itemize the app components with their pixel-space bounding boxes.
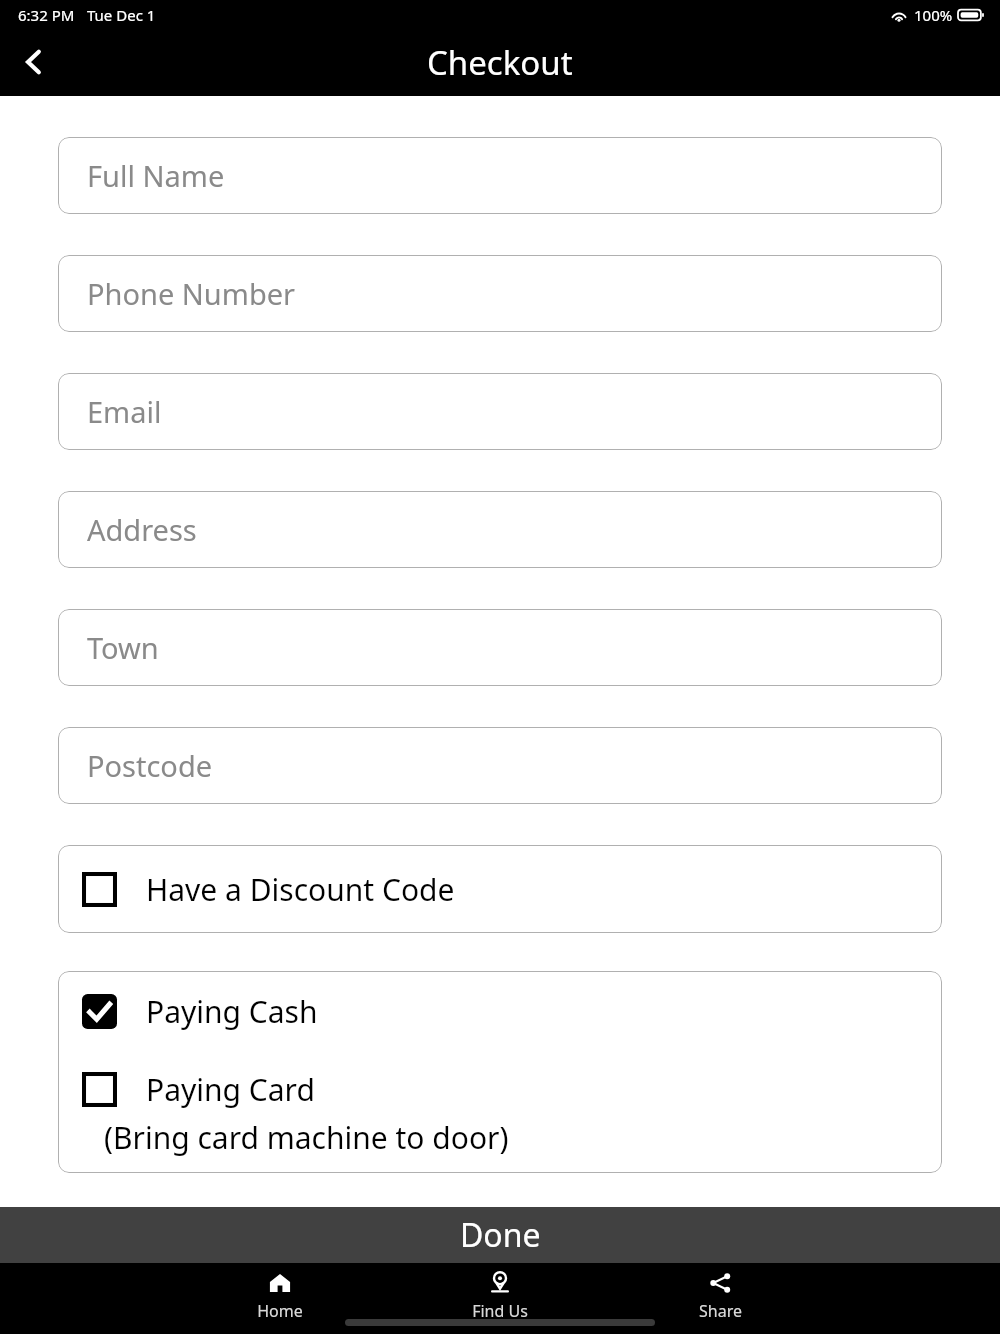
- button[interactable]: Phone Number: [58, 255, 942, 332]
- staticText: Phone Number: [87, 274, 296, 313]
- other: Share: [708, 1271, 732, 1295]
- staticText: Paying Cash: [146, 991, 318, 1032]
- button[interactable]: Home: [170, 1263, 390, 1322]
- button[interactable]: Address: [58, 491, 942, 568]
- button[interactable]: Email: [58, 373, 942, 450]
- button[interactable]: Have a Discount Code: [58, 845, 942, 933]
- staticText: Share: [699, 1300, 742, 1322]
- button[interactable]: Full Name: [58, 137, 942, 214]
- staticText: Paying Card: [146, 1069, 315, 1110]
- staticText: Address: [87, 510, 197, 549]
- staticText: Tue Dec 1: [87, 5, 156, 25]
- staticText: (Bring card machine to door): [104, 1117, 509, 1158]
- button[interactable]: Done: [0, 1207, 1000, 1263]
- staticText: Home: [257, 1300, 303, 1322]
- staticText: Town: [87, 628, 159, 667]
- staticText: Postcode: [87, 746, 213, 785]
- button[interactable]: Paying Cash: [58, 971, 942, 1051]
- other: Find Us: [488, 1271, 512, 1295]
- button[interactable]: Share: [610, 1263, 830, 1322]
- button[interactable]: Find Us: [390, 1263, 610, 1322]
- button[interactable]: Town: [58, 609, 942, 686]
- staticText: Have a Discount Code: [146, 869, 455, 910]
- button[interactable]: Paying Card: [58, 1051, 942, 1158]
- staticText: 6:32 PM: [18, 5, 75, 25]
- other: Home: [268, 1271, 292, 1295]
- staticText: Email: [87, 392, 162, 431]
- staticText: 100%: [914, 5, 953, 25]
- staticText: Find Us: [472, 1300, 528, 1322]
- button[interactable]: Back: [0, 28, 68, 96]
- staticText: Done: [460, 1213, 541, 1257]
- staticText: Full Name: [87, 156, 225, 195]
- staticText: Checkout: [427, 40, 573, 85]
- button[interactable]: Postcode: [58, 727, 942, 804]
